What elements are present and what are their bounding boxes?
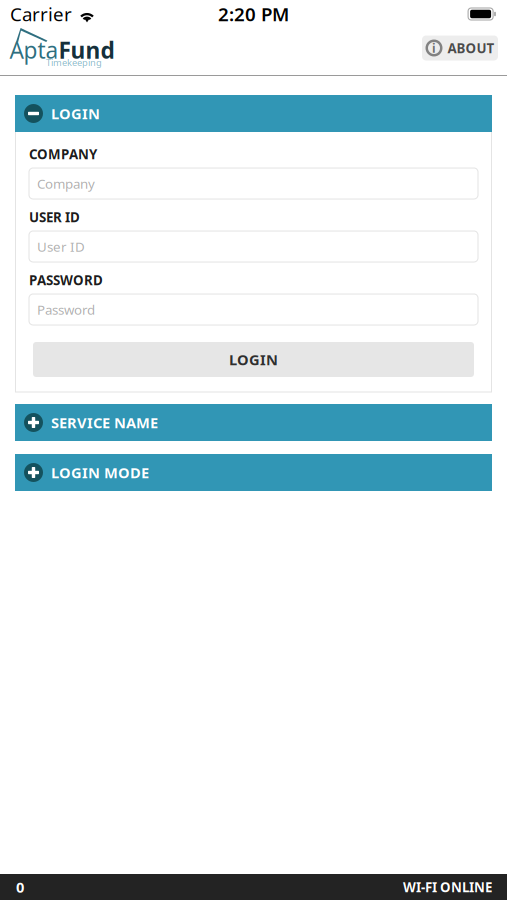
staticText: ABOUT: [447, 39, 494, 57]
button[interactable]: LOGIN: [15, 95, 492, 132]
button[interactable]: User ID: [29, 231, 478, 262]
staticText: Fund: [58, 35, 114, 65]
staticText: Carrier: [10, 2, 72, 26]
staticText: SERVICE NAME: [51, 413, 158, 432]
staticText: LOGIN MODE: [51, 463, 149, 482]
staticText: Timekeeping: [46, 56, 102, 69]
staticText: LOGIN: [229, 350, 278, 369]
staticText: LOGIN: [51, 104, 100, 123]
staticText: USER ID: [29, 208, 80, 226]
button[interactable]: Password: [29, 294, 478, 325]
staticText: Company: [37, 175, 95, 192]
button[interactable]: Company: [29, 168, 478, 199]
staticText: Password: [37, 301, 95, 318]
button[interactable]: SERVICE NAME: [15, 404, 492, 441]
button[interactable]: LOGIN: [33, 342, 474, 377]
staticText: Apta: [9, 35, 58, 65]
staticText: WI-FI ONLINE: [403, 878, 492, 896]
staticText: PASSWORD: [29, 271, 103, 289]
staticText: User ID: [37, 238, 85, 255]
staticText: COMPANY: [29, 145, 97, 163]
staticText: 0: [16, 877, 24, 897]
staticText: 2:20 PM: [218, 2, 289, 26]
button[interactable]: LOGIN MODE: [15, 454, 492, 491]
button[interactable]: i: [422, 35, 498, 60]
staticText: i: [432, 40, 436, 56]
